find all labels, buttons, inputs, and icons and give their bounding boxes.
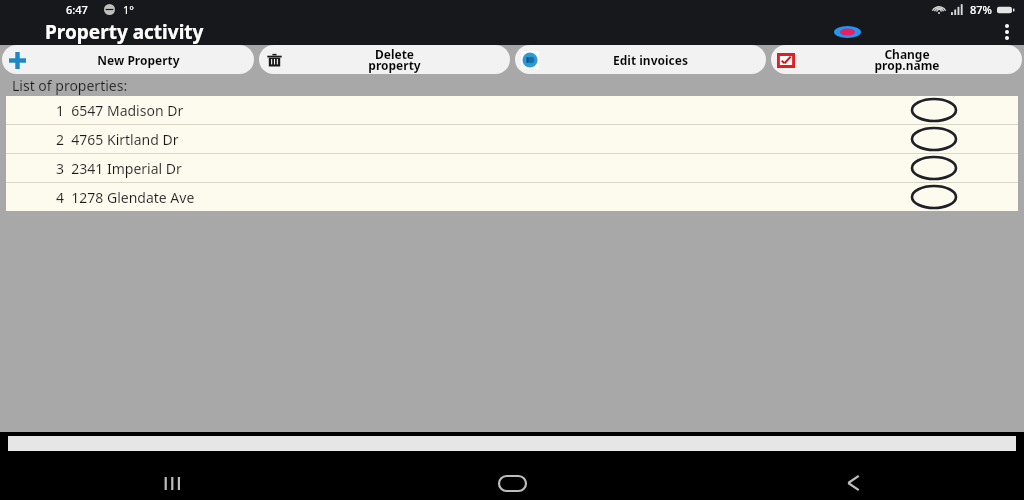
- button[interactable]: Delete property: [259, 45, 510, 74]
- button[interactable]: Change prop.name: [771, 45, 1022, 74]
- button[interactable]: 4 1278 Glendate Ave: [6, 183, 1018, 211]
- staticText: 3 2341 Imperial Dr: [56, 159, 182, 178]
- staticText: 1°: [123, 2, 134, 17]
- staticText: List of properties:: [12, 76, 128, 95]
- button[interactable]: 2 4765 Kirtland Dr: [6, 125, 1018, 153]
- button[interactable]: 3 2341 Imperial Dr: [6, 154, 1018, 182]
- staticText: 87%: [970, 2, 992, 17]
- button[interactable]: Recent apps: [0, 466, 341, 500]
- staticText: 4 1278 Glendate Ave: [56, 188, 195, 207]
- staticText: Delete property: [368, 46, 421, 74]
- staticText: Change prop.name: [874, 46, 940, 74]
- button[interactable]: Back: [683, 466, 1024, 500]
- button[interactable]: More options: [990, 18, 1024, 45]
- staticText: New Property: [97, 52, 180, 68]
- staticText: 2 4765 Kirtland Dr: [56, 130, 179, 149]
- button[interactable]: Home: [342, 466, 683, 500]
- staticText: Edit invoices: [613, 52, 688, 68]
- staticText: Property activity: [45, 19, 204, 45]
- button[interactable]: Edit invoices: [515, 45, 766, 74]
- button[interactable]: New Property: [2, 45, 254, 74]
- staticText: 1 6547 Madison Dr: [56, 101, 184, 120]
- staticText: 6:47: [66, 2, 88, 17]
- button[interactable]: 1 6547 Madison Dr: [6, 96, 1018, 124]
